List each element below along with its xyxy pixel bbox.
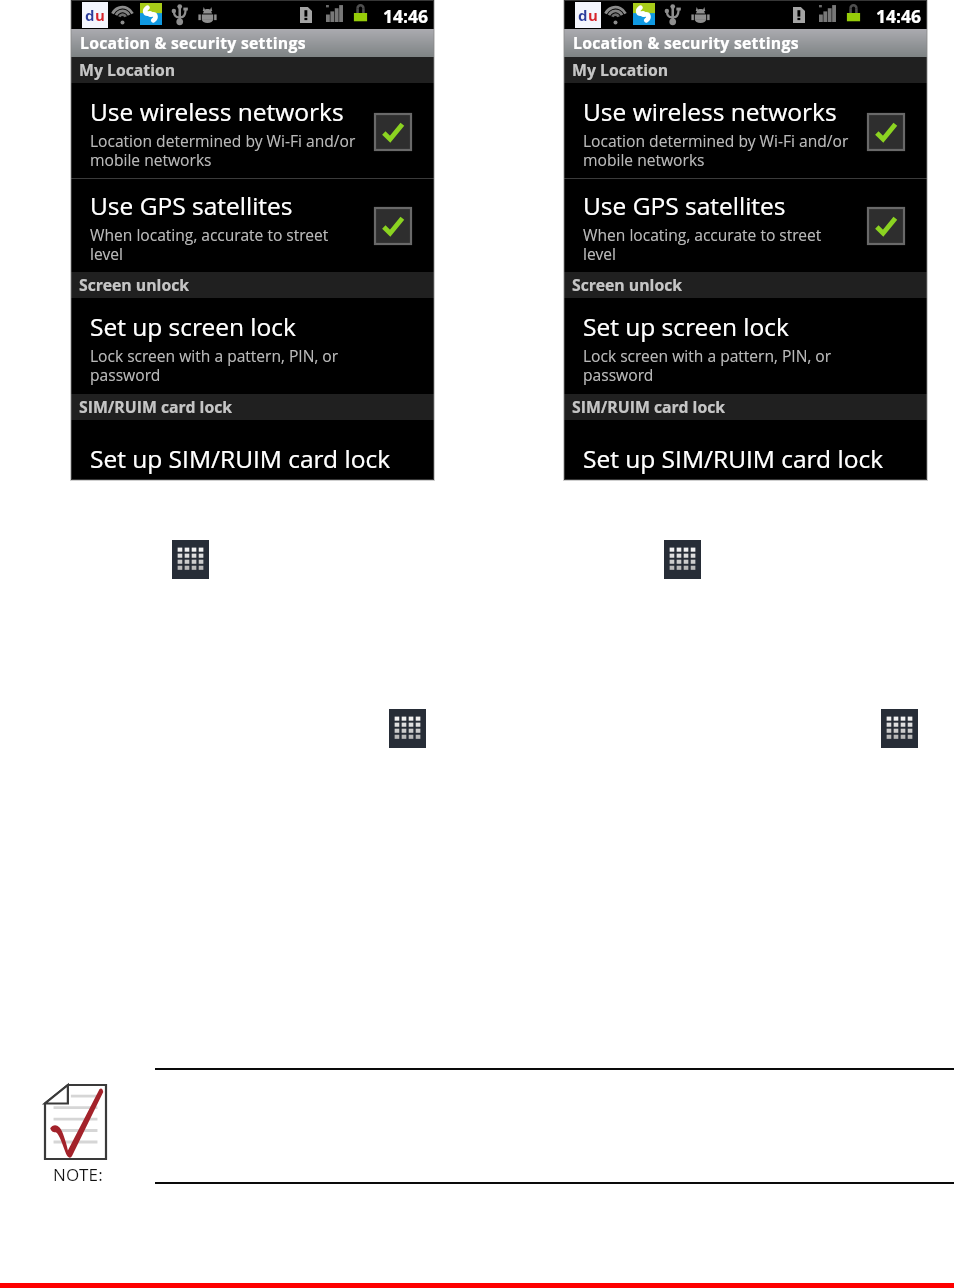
staticText: Lock screen with a pattern, PIN, or pass…	[583, 345, 832, 386]
button[interactable]: Toggle Use wireless networks	[868, 114, 904, 150]
button[interactable]: Toggle Use GPS satellites	[868, 208, 904, 244]
staticText: Lock screen with a pattern, PIN, or pass…	[90, 345, 339, 386]
staticText: Screen unlock	[79, 274, 190, 296]
button[interactable]: Use wireless networks	[71, 85, 434, 178]
staticText: d	[85, 5, 95, 25]
staticText: Location determined by Wi-Fi and/or mobi…	[583, 130, 849, 171]
button[interactable]: Use GPS satellites	[564, 179, 927, 272]
staticText: Location & security settings	[80, 32, 306, 54]
staticText: Set up screen lock	[583, 310, 789, 343]
staticText: Use GPS satellites	[583, 189, 786, 222]
staticText: u	[95, 5, 105, 25]
button[interactable]: Set up screen lock	[564, 300, 927, 394]
button[interactable]: All apps	[664, 540, 701, 579]
button[interactable]: All apps	[172, 540, 209, 579]
staticText: NOTE:	[43, 1163, 113, 1186]
staticText: Set up SIM/RUIM card lock	[90, 442, 391, 475]
button[interactable]: Toggle Use GPS satellites	[375, 208, 411, 244]
button[interactable]: Use GPS satellites	[71, 179, 434, 272]
staticText: Screen unlock	[572, 274, 683, 296]
button[interactable]: Toggle Use wireless networks	[375, 114, 411, 150]
staticText: When locating, accurate to street level	[90, 224, 329, 265]
staticText: SIM/RUIM card lock	[79, 396, 233, 418]
staticText: Location determined by Wi-Fi and/or mobi…	[90, 130, 356, 171]
staticText: My Location	[79, 59, 176, 81]
button[interactable]: Set up screen lock	[71, 300, 434, 394]
staticText: Use wireless networks	[90, 95, 344, 128]
staticText: d	[578, 5, 588, 25]
staticText: u	[588, 5, 598, 25]
staticText: Location & security settings	[573, 32, 799, 54]
button[interactable]: Set up SIM/RUIM card lock	[564, 422, 927, 480]
staticText: Set up screen lock	[90, 310, 296, 343]
staticText: My Location	[572, 59, 669, 81]
staticText: Set up SIM/RUIM card lock	[583, 442, 884, 475]
staticText: When locating, accurate to street level	[583, 224, 822, 265]
button[interactable]: Use wireless networks	[564, 85, 927, 178]
button[interactable]: Set up SIM/RUIM card lock	[71, 422, 434, 480]
button[interactable]: All apps	[881, 709, 918, 748]
staticText: 14:46	[876, 4, 921, 28]
button[interactable]: All apps	[389, 709, 426, 748]
staticText: Use GPS satellites	[90, 189, 293, 222]
staticText: SIM/RUIM card lock	[572, 396, 726, 418]
staticText: 14:46	[383, 4, 428, 28]
staticText: Use wireless networks	[583, 95, 837, 128]
